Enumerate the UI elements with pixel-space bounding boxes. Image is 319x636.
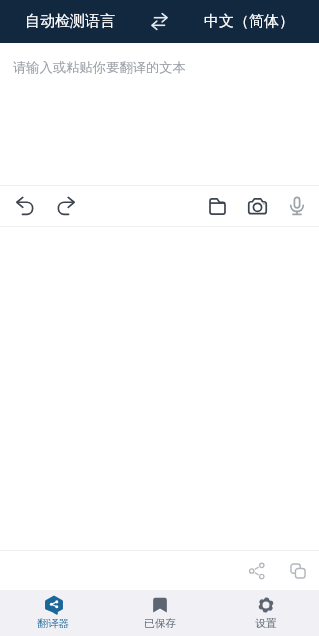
staticText: 设置 <box>255 617 277 631</box>
button[interactable]: Share <box>236 551 277 590</box>
button[interactable]: Copy <box>277 551 318 590</box>
staticText: 已保存 <box>144 617 177 631</box>
button[interactable]: 翻译器 <box>0 590 107 636</box>
staticText: 中文（简体） <box>204 12 294 31</box>
button[interactable]: 已保存 <box>107 590 213 636</box>
button[interactable]: Swap languages <box>139 0 179 43</box>
button[interactable]: Voice input <box>277 186 317 226</box>
button[interactable]: 自动检测语言 <box>0 0 139 43</box>
button[interactable]: 中文（简体） <box>179 0 319 43</box>
button[interactable]: Documents <box>197 186 237 226</box>
button[interactable]: Undo <box>4 186 45 226</box>
staticText: 自动检测语言 <box>25 12 115 31</box>
button[interactable]: Redo <box>45 186 86 226</box>
button[interactable]: 设置 <box>213 590 319 636</box>
staticText: 请输入或粘贴你要翻译的文本 <box>13 59 186 76</box>
button[interactable]: 请输入或粘贴你要翻译的文本 <box>0 43 319 185</box>
button[interactable]: Camera <box>237 186 277 226</box>
staticText: 翻译器 <box>37 617 70 631</box>
